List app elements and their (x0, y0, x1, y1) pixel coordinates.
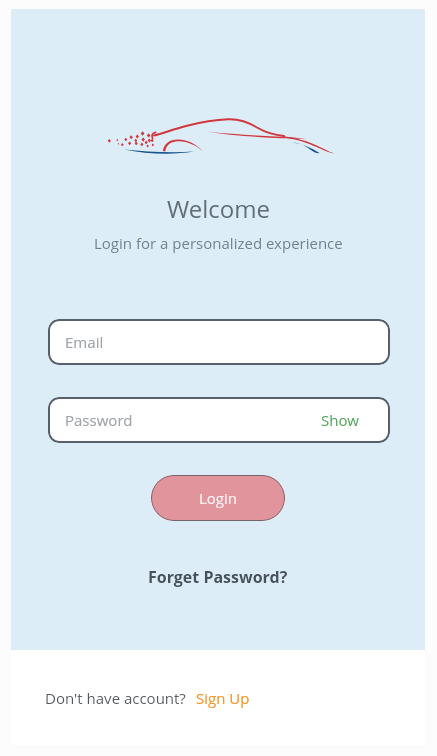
staticText: Don't have account? (45, 688, 186, 708)
staticText: Login for a personalized experience (94, 233, 343, 253)
button[interactable]: Forget Password? (148, 566, 288, 588)
button[interactable]: Sign Up (196, 688, 250, 708)
staticText: Login (199, 488, 238, 508)
button[interactable]: Email (48, 319, 390, 365)
staticText: Email (65, 332, 104, 352)
button[interactable]: Login (151, 475, 285, 521)
staticText: Welcome (167, 192, 270, 225)
staticText: Show (321, 410, 359, 430)
staticText: Sign Up (196, 688, 250, 708)
staticText: Forget Password? (148, 566, 288, 588)
staticText: Password (65, 410, 133, 430)
button[interactable]: Password (48, 397, 390, 443)
